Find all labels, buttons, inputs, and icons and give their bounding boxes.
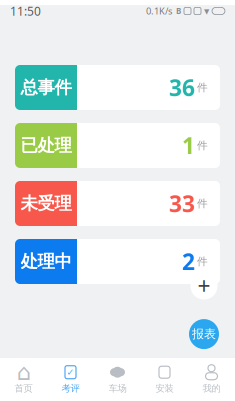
staticText: 11:50	[10, 3, 41, 19]
staticText: 件	[197, 139, 208, 152]
staticText: B	[176, 6, 181, 16]
button[interactable]: Add	[190, 271, 217, 301]
staticText: 0.1K/s	[146, 5, 172, 17]
staticText: 报表	[192, 327, 216, 341]
staticText: 首页	[14, 383, 32, 394]
staticText: 考评	[61, 383, 79, 394]
staticText: ▾	[204, 5, 209, 17]
staticText: 总事件	[20, 77, 71, 98]
staticText: 2	[182, 246, 195, 276]
staticText: 件	[197, 255, 208, 268]
button[interactable]: 我的	[188, 365, 235, 394]
staticText: 处理中	[20, 251, 71, 272]
staticText: 我的	[202, 383, 220, 394]
button[interactable]: 报表	[189, 319, 219, 349]
staticText: 安装	[155, 383, 173, 394]
button[interactable]: ⌂	[0, 365, 47, 394]
staticText: 36	[169, 72, 195, 102]
button[interactable]: ✓	[47, 365, 94, 394]
staticText: 件	[197, 81, 208, 94]
staticText: +	[197, 271, 210, 301]
staticText: ✓	[66, 367, 74, 377]
button[interactable]: 车场	[94, 365, 141, 394]
staticText: ⌂	[16, 359, 30, 385]
staticText: 已处理	[20, 135, 71, 156]
button[interactable]: 处理中	[15, 239, 220, 284]
staticText: 1	[182, 130, 195, 160]
staticText: 33	[169, 188, 195, 218]
button[interactable]: 总事件	[15, 65, 220, 110]
button[interactable]: 安装	[141, 365, 188, 394]
staticText: 件	[197, 197, 208, 210]
staticText: 车场	[108, 383, 126, 394]
button[interactable]: 已处理	[15, 123, 220, 168]
staticText: 未受理	[20, 193, 71, 214]
button[interactable]: 未受理	[15, 181, 220, 226]
